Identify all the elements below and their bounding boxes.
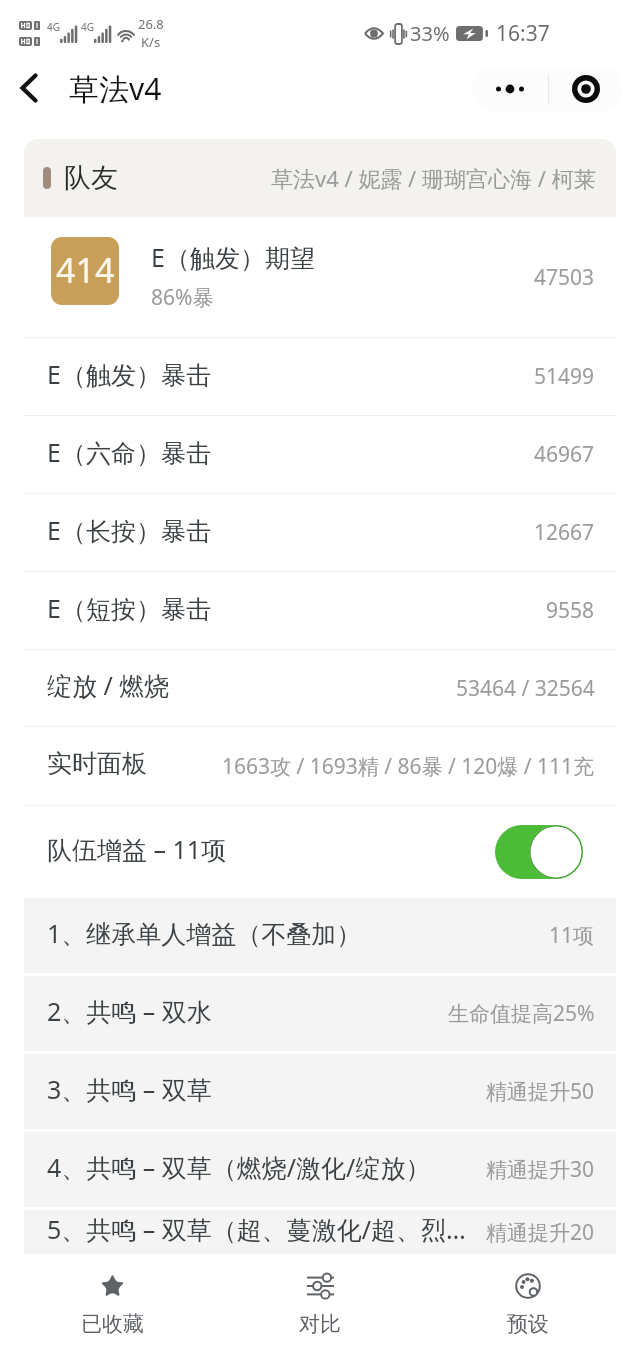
staticText: 9558 — [546, 596, 595, 625]
button[interactable]: 4、共鸣 – 双草（燃烧/激化/绽放） — [24, 1132, 616, 1207]
staticText: 精通提升20 — [486, 1218, 595, 1247]
button[interactable]: 对比 — [216, 1254, 424, 1349]
staticText: 16:37 — [496, 19, 550, 48]
staticText: 队友 — [64, 161, 118, 195]
staticText: 11项 — [549, 921, 595, 950]
staticText: 51499 — [534, 362, 595, 391]
staticText: 1663攻 / 1693精 / 86暴 / 120爆 / 111充 — [222, 752, 595, 781]
staticText: E（触发）期望 — [151, 240, 315, 274]
button[interactable]: 实时面板 — [24, 727, 616, 805]
button[interactable]: Back — [0, 66, 58, 110]
staticText: 5、共鸣 – 双草（超、蔓激化/超、烈… — [47, 1212, 466, 1246]
button[interactable]: E（长按）暴击 — [24, 494, 616, 571]
staticText: E（长按）暴击 — [47, 513, 211, 547]
button[interactable]: 已收藏 — [9, 1254, 216, 1349]
staticText: 队伍增益 – 11项 — [47, 832, 227, 866]
staticText: 414 — [56, 247, 115, 293]
staticText: 已收藏 — [81, 1311, 144, 1337]
staticText: 绽放 / 燃烧 — [47, 668, 170, 702]
button[interactable]: E（短按）暴击 — [24, 572, 616, 649]
staticText: K/s — [141, 33, 161, 51]
staticText: 生命值提高25% — [448, 999, 595, 1028]
staticText: 4、共鸣 – 双草（燃烧/激化/绽放） — [47, 1150, 431, 1184]
staticText: 86%暴 — [151, 283, 214, 312]
staticText: 33% — [410, 20, 450, 47]
staticText: E（短按）暴击 — [47, 591, 211, 625]
button[interactable]: 3、共鸣 – 双草 — [24, 1054, 616, 1129]
staticText: 精通提升30 — [486, 1155, 595, 1184]
staticText: 实时面板 — [47, 748, 147, 779]
button[interactable]: 414 — [24, 217, 616, 337]
staticText: 草法v4 — [69, 68, 162, 109]
button[interactable]: E（触发）暴击 — [24, 338, 616, 415]
staticText: 46967 — [534, 440, 595, 469]
staticText: 预设 — [507, 1311, 549, 1337]
button[interactable]: 5、共鸣 – 双草（超、蔓激化/超、烈… — [24, 1210, 616, 1254]
button[interactable]: 绽放 / 燃烧 — [24, 650, 616, 726]
staticText: E（触发）暴击 — [47, 357, 211, 391]
staticText: E（六命）暴击 — [47, 435, 211, 469]
staticText: 草法v4 / 妮露 / 珊瑚宫心海 / 柯莱 — [271, 163, 596, 193]
staticText: 47503 — [534, 263, 595, 292]
staticText: 12667 — [534, 518, 595, 547]
staticText: 3、共鸣 – 双草 — [47, 1072, 212, 1106]
button[interactable]: 队伍增益 – 11项 — [24, 806, 616, 898]
button[interactable]: Close — [549, 66, 622, 112]
button[interactable]: E（六命）暴击 — [24, 416, 616, 493]
button[interactable]: 预设 — [424, 1254, 632, 1349]
button[interactable]: 1、继承单人增益（不叠加） — [24, 898, 616, 973]
staticText: 1、继承单人增益（不叠加） — [47, 916, 362, 950]
staticText: 精通提升50 — [486, 1077, 595, 1106]
button[interactable]: More — [471, 66, 548, 112]
staticText: 4G — [81, 20, 94, 34]
staticText: 4G — [47, 20, 60, 34]
staticText: 对比 — [299, 1311, 341, 1337]
staticText: 53464 / 32564 — [456, 674, 595, 703]
button[interactable]: 2、共鸣 – 双水 — [24, 976, 616, 1051]
staticText: 26.8 — [138, 15, 164, 33]
staticText: 2、共鸣 – 双水 — [47, 994, 212, 1028]
